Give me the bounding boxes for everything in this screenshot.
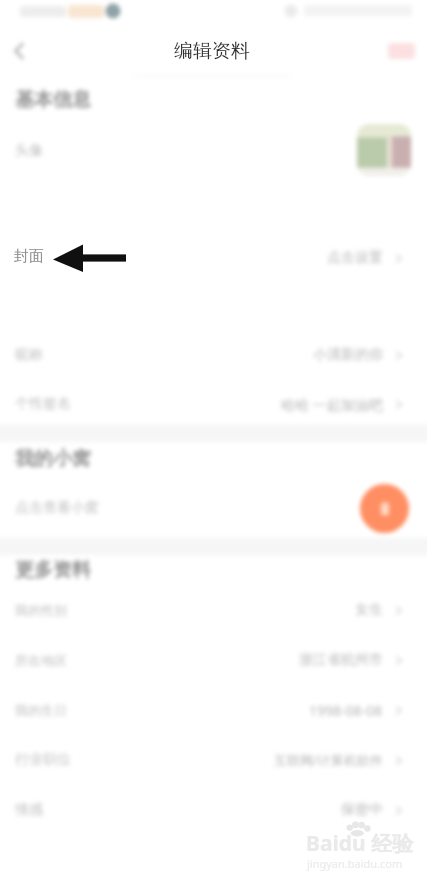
staticText: 女生 xyxy=(355,601,383,619)
staticText: 我的生日 xyxy=(15,702,67,718)
staticText: 1998-08-08 xyxy=(309,701,383,720)
button[interactable]: 头像 xyxy=(0,121,427,181)
staticText: 所在地区 xyxy=(15,652,67,668)
button[interactable]: 点击查看小窝 xyxy=(0,480,427,536)
button[interactable]: 行业职位 xyxy=(0,736,427,784)
staticText: jingyan.baidu.com xyxy=(307,856,403,871)
button[interactable]: Avatar xyxy=(357,124,411,176)
staticText: 哈哈 一起加油吧 xyxy=(281,395,383,414)
staticText: 浙江省杭州市 xyxy=(299,651,383,669)
staticText: Baidu 经验 xyxy=(306,829,414,858)
button[interactable]: 个性签名 xyxy=(0,380,427,428)
button[interactable]: 我的生日 xyxy=(0,686,427,734)
button[interactable]: 所在地区 xyxy=(0,636,427,684)
staticText: 基本信息 xyxy=(15,88,91,112)
button[interactable]: Save xyxy=(388,43,415,59)
button[interactable]: 情感 xyxy=(0,786,427,834)
staticText: 保密中 xyxy=(341,801,383,819)
staticText: 我的性别 xyxy=(15,602,67,618)
button[interactable]: 昵称 xyxy=(0,331,427,379)
staticText: 我的小窝 xyxy=(15,447,91,471)
staticText: 头像 xyxy=(15,142,43,160)
staticText: 互联网/计算机软件 xyxy=(274,751,383,769)
staticText: 情感 xyxy=(15,801,43,819)
button[interactable]: Cottage badge xyxy=(360,484,409,533)
staticText: 点击设置 xyxy=(327,249,383,267)
staticText: 小清新的你 xyxy=(313,346,383,364)
staticText: 点击查看小窝 xyxy=(15,499,99,517)
button[interactable]: 封面 xyxy=(0,228,427,288)
staticText: 更多资料 xyxy=(15,558,91,582)
staticText: 编辑资料 xyxy=(174,39,250,63)
staticText: 行业职位 xyxy=(15,751,71,769)
button[interactable]: Back xyxy=(2,34,36,68)
staticText: 封面 xyxy=(14,247,44,266)
button[interactable]: 我的性别 xyxy=(0,586,427,634)
staticText: 昵称 xyxy=(15,346,43,364)
staticText: 个性签名 xyxy=(15,395,71,413)
